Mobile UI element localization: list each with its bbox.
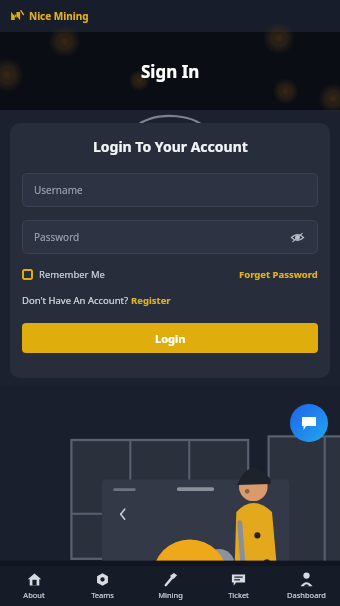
staticText: Username [34, 183, 83, 197]
staticText: Dashboard [287, 590, 326, 600]
staticText: Mining [158, 590, 183, 600]
staticText: Login [155, 331, 186, 346]
staticText: Forget Password [239, 268, 318, 281]
staticText: Nice Mining [29, 9, 89, 23]
button[interactable]: Chat support [290, 404, 328, 442]
staticText: About [23, 590, 45, 600]
staticText: Remember Me [39, 268, 105, 281]
staticText: Login To Your Account [93, 137, 248, 156]
staticText: Ticket [228, 590, 249, 600]
button[interactable]: Forget Password [239, 268, 318, 281]
button[interactable]: Password [22, 220, 318, 254]
button[interactable]: Teams [68, 566, 136, 606]
button[interactable]: Remember Me [22, 268, 105, 281]
button[interactable]: Dashboard [272, 566, 340, 606]
button[interactable]: Show password [288, 228, 306, 246]
staticText: Teams [91, 590, 114, 600]
staticText: Password [34, 230, 80, 244]
button[interactable]: Ticket [204, 566, 272, 606]
staticText: Sign In [141, 60, 200, 83]
button[interactable]: About [0, 566, 68, 606]
button[interactable]: Mining [136, 566, 204, 606]
button[interactable]: Username [22, 173, 318, 207]
button[interactable]: Login [22, 323, 318, 353]
staticText: Don't Have An Account? [22, 294, 131, 307]
button[interactable]: Register [131, 294, 171, 307]
staticText: Register [131, 294, 171, 307]
